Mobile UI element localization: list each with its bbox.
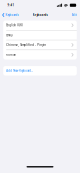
staticText: English (UK) xyxy=(6,23,23,27)
staticText: Keyboards xyxy=(32,13,47,17)
button[interactable]: Emoji xyxy=(3,30,77,40)
staticText: Chinese, Simplified - Pinyin xyxy=(6,43,46,47)
staticText: Korean xyxy=(6,53,16,56)
button[interactable]: English (UK) xyxy=(3,20,77,30)
staticText: Keyboards xyxy=(5,13,18,17)
button[interactable]: Keyboards xyxy=(0,11,18,19)
staticText: Emoji xyxy=(6,33,13,37)
staticText: Add New Keyboard… xyxy=(6,69,33,72)
staticText: 9:41 xyxy=(7,3,14,7)
button[interactable]: Chinese, Simplified - Pinyin xyxy=(3,40,77,50)
button[interactable]: Edit xyxy=(72,11,80,19)
button[interactable]: Add New Keyboard… xyxy=(3,66,77,76)
button[interactable]: Korean xyxy=(3,50,77,60)
staticText: Edit xyxy=(72,13,77,17)
